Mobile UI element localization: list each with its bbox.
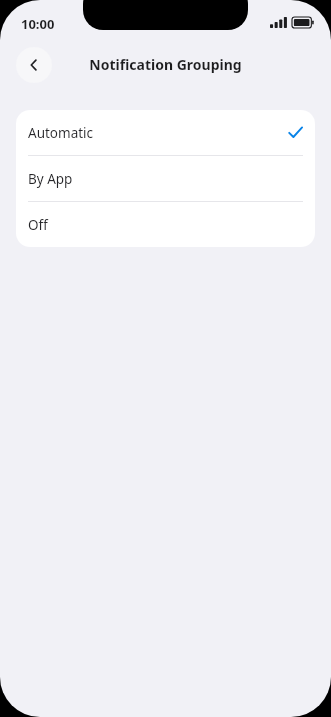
staticText: Notification Grouping	[89, 55, 242, 74]
button[interactable]: Off	[16, 202, 315, 247]
button[interactable]: By App	[16, 156, 315, 201]
staticText: By App	[28, 170, 73, 188]
staticText: Automatic	[28, 124, 94, 142]
button[interactable]: Back	[16, 47, 52, 83]
button[interactable]: Automatic	[16, 110, 315, 155]
staticText: 10:00	[21, 15, 55, 33]
staticText: Off	[28, 216, 48, 234]
